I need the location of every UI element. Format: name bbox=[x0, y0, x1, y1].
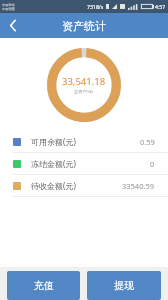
staticText: 充值 bbox=[34, 279, 54, 292]
staticText: 33540.59 bbox=[122, 181, 155, 191]
button[interactable]: 冻结金额(元) bbox=[0, 153, 168, 174]
staticText: 33,541.18 bbox=[62, 75, 106, 88]
staticText: 0 bbox=[150, 159, 155, 169]
button[interactable]: 提现 bbox=[87, 271, 161, 300]
button[interactable]: 充值 bbox=[7, 271, 80, 300]
staticText: 总资产(元) bbox=[74, 89, 94, 95]
staticText: 中国电信 bbox=[2, 3, 15, 7]
staticText: 待收金额(元) bbox=[31, 180, 76, 191]
staticText: 冻结金额(元) bbox=[31, 158, 76, 169]
staticText: 0.59 bbox=[140, 137, 155, 147]
staticText: 可用余额(元) bbox=[31, 136, 76, 147]
button[interactable]: Back bbox=[0, 13, 26, 38]
staticText: 14:57 bbox=[152, 3, 166, 10]
button[interactable]: 待收金额(元) bbox=[0, 175, 168, 196]
staticText: 资产统计 bbox=[62, 19, 106, 33]
staticText: 提现 bbox=[114, 279, 134, 292]
staticText: 7318/s bbox=[87, 3, 104, 10]
button[interactable]: 可用余额(元) bbox=[0, 131, 168, 152]
staticText: 中国联通 bbox=[2, 7, 15, 11]
